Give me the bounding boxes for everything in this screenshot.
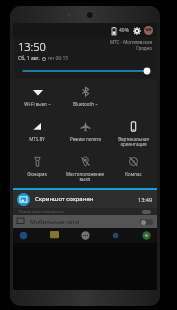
staticText: 49% <box>119 27 129 34</box>
button[interactable]: Мобильные сети <box>13 215 157 228</box>
staticText: Скриншот сохранен <box>35 195 138 203</box>
button[interactable]: User profile <box>144 26 153 35</box>
staticText: Мобильные сети <box>30 218 140 226</box>
staticText: Гродно <box>136 45 152 51</box>
staticText: пн 06:15 <box>48 55 69 62</box>
button[interactable]: App <box>80 230 91 241</box>
staticText: Wi-Fi выкл <box>24 101 47 107</box>
button[interactable]: Режим полета <box>61 116 109 151</box>
button[interactable]: Bluetooth <box>61 81 109 116</box>
button[interactable]: Вертикальная ориентация <box>109 116 157 151</box>
staticText: Местоположение выкл <box>66 171 104 182</box>
button[interactable]: Фонарик <box>13 151 61 186</box>
staticText: Сб, 1 авг. <box>18 55 40 62</box>
staticText: Компас <box>125 171 142 177</box>
staticText: Режим полета <box>70 136 101 142</box>
button[interactable]: App <box>49 230 60 241</box>
staticText: Вертикальная ориентация <box>118 136 149 147</box>
button[interactable]: MTS.BY <box>13 116 61 151</box>
staticText: Фонарик <box>27 171 47 177</box>
staticText: МТС - Могилевская <box>110 39 152 45</box>
button[interactable]: Компас <box>109 151 157 186</box>
button[interactable]: Settings <box>132 26 141 35</box>
button[interactable]: App <box>18 230 29 241</box>
staticText: Bluetooth <box>73 101 94 107</box>
button[interactable]: Brightness <box>13 63 157 79</box>
button[interactable]: Wi-Fi выкл <box>13 81 61 116</box>
staticText: Режим энергосбережения <box>19 209 142 214</box>
staticText: 13:50 <box>18 39 46 54</box>
staticText: MTS.BY <box>29 136 45 142</box>
staticText: 13:49 <box>138 196 153 203</box>
button[interactable]: Скриншот сохранен <box>13 190 157 208</box>
button[interactable]: App <box>141 230 152 241</box>
button[interactable]: App <box>110 230 121 241</box>
button[interactable]: Местоположение выкл <box>61 151 109 186</box>
